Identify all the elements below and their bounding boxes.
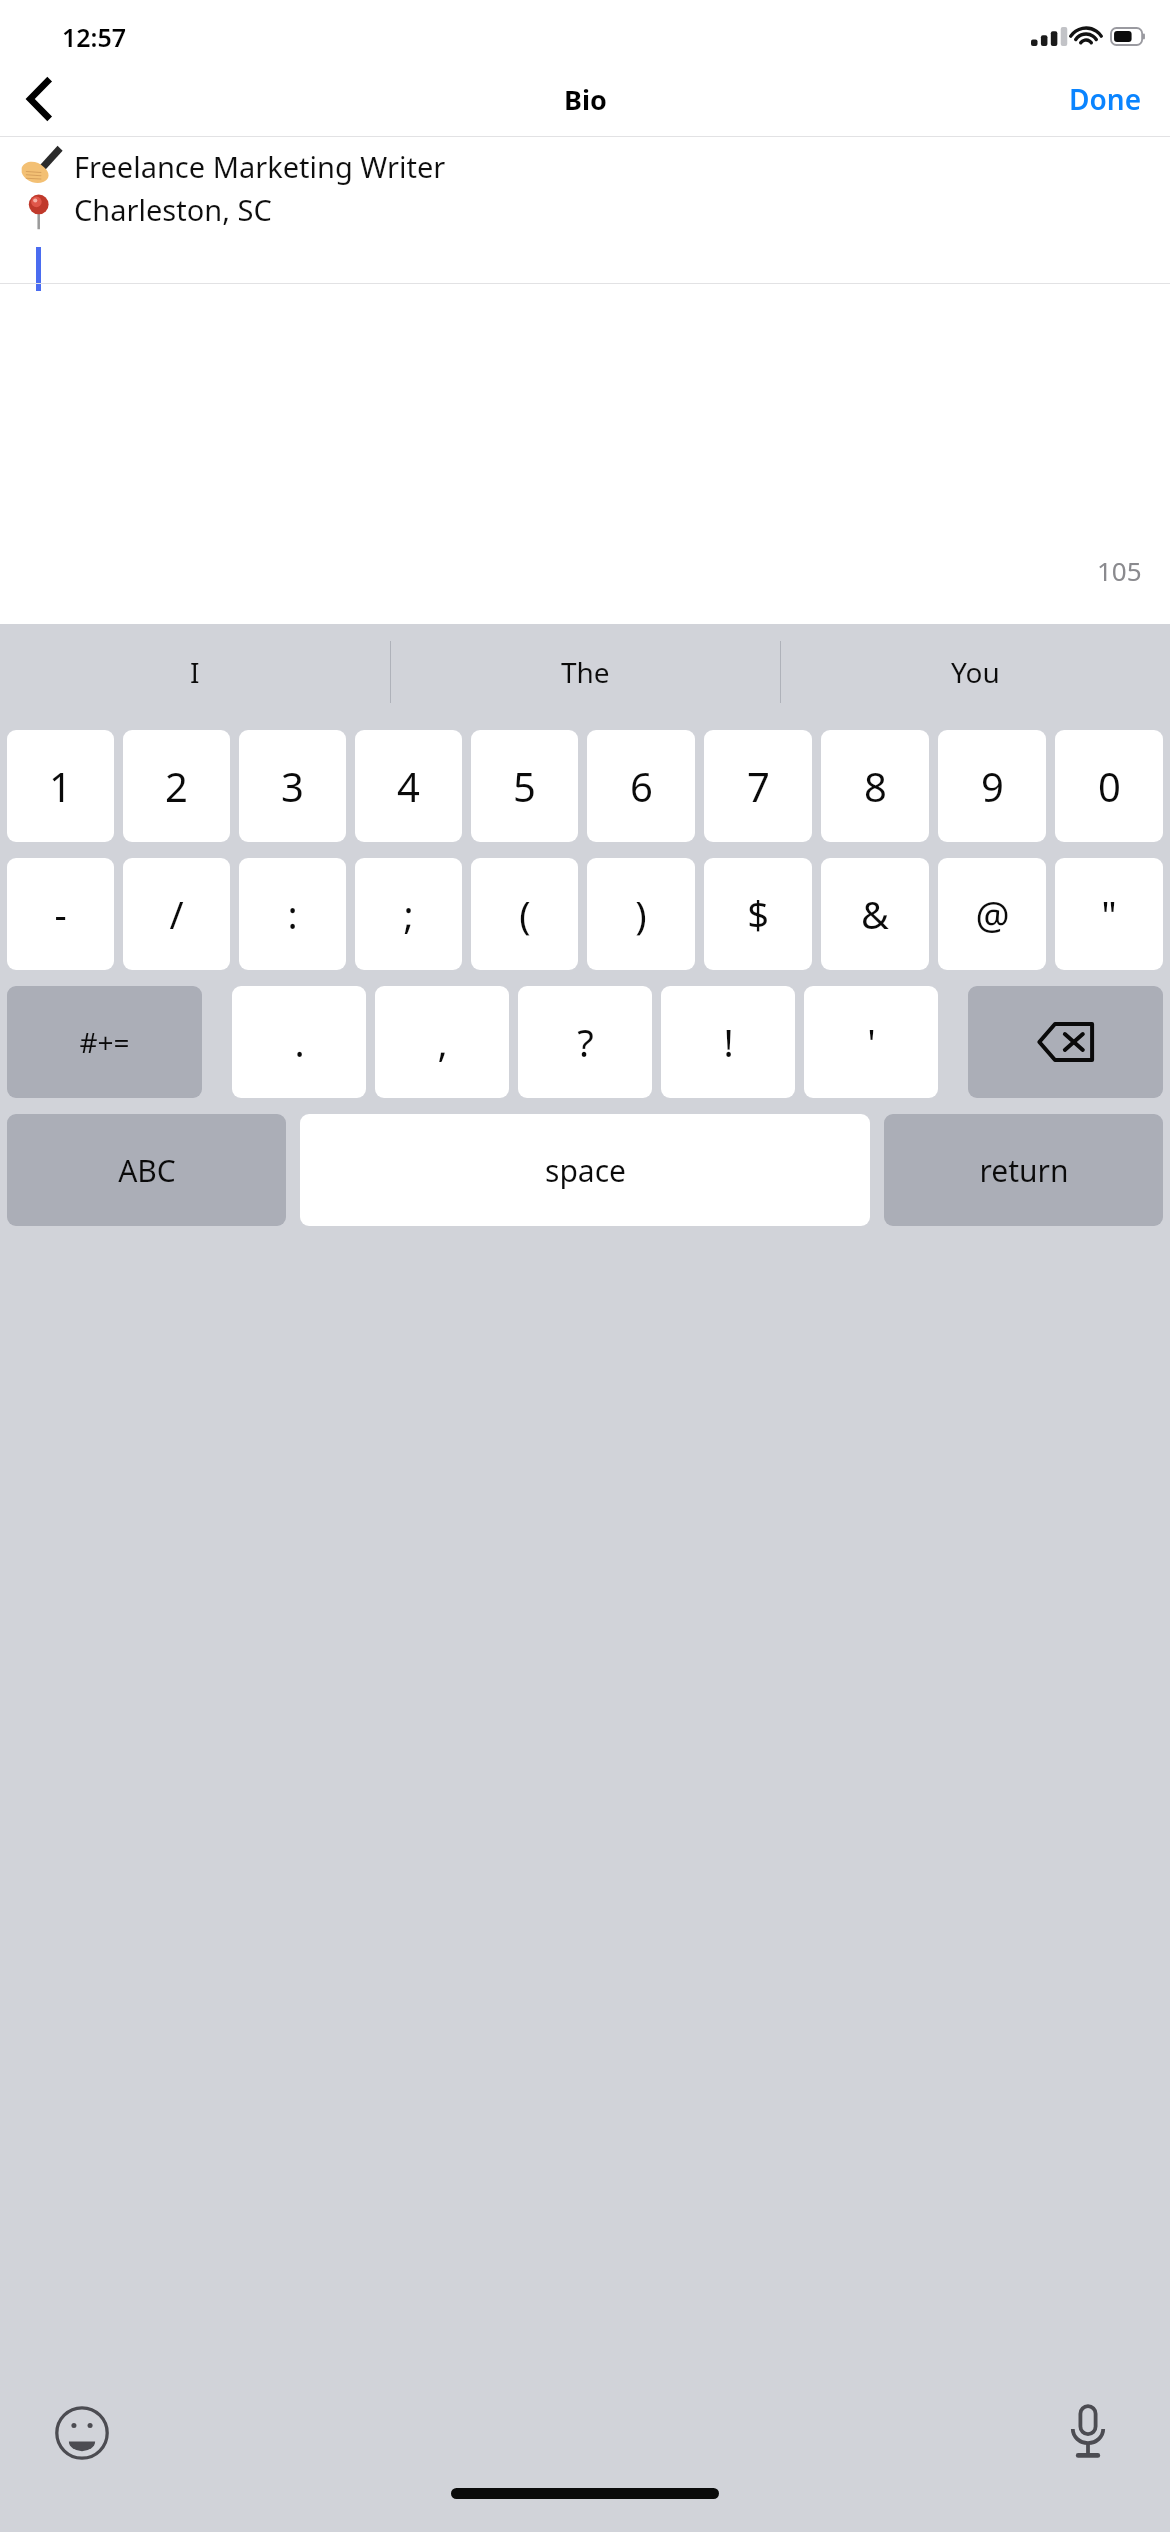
button[interactable]: Back (0, 62, 78, 136)
staticText: 6 (630, 759, 653, 813)
staticText: / (169, 888, 184, 940)
staticText: The (561, 653, 610, 691)
staticText: 4 (397, 759, 420, 813)
button[interactable]: #+= (7, 986, 202, 1098)
staticText: : (287, 888, 298, 940)
button[interactable]: $ (704, 858, 812, 970)
button[interactable]: Done (1041, 62, 1170, 136)
staticText: You (951, 653, 1000, 691)
button[interactable]: ! (661, 986, 795, 1098)
button[interactable]: . (232, 986, 366, 1098)
button[interactable]: , (375, 986, 509, 1098)
button[interactable]: 0 (1055, 730, 1163, 842)
button[interactable]: ) (587, 858, 695, 970)
button[interactable]: ; (355, 858, 462, 970)
button[interactable]: ABC (7, 1114, 286, 1226)
staticText: @ (975, 888, 1010, 940)
button[interactable]: Delete (968, 986, 1163, 1098)
staticText: ? (577, 1016, 594, 1068)
button[interactable]: 3 (239, 730, 346, 842)
button[interactable]: / (123, 858, 230, 970)
staticText: - (54, 888, 67, 940)
button[interactable]: return (884, 1114, 1163, 1226)
staticText: $ (747, 888, 769, 940)
staticText: I (190, 653, 200, 691)
button[interactable]: - (7, 858, 114, 970)
staticText: 2 (165, 759, 188, 813)
staticText: 0 (1098, 759, 1121, 813)
button[interactable]: 5 (471, 730, 578, 842)
button[interactable]: & (821, 858, 929, 970)
button[interactable]: Dictation (1052, 2397, 1124, 2469)
button[interactable]: " (1055, 858, 1163, 970)
staticText: 1 (49, 759, 72, 813)
staticText: . (294, 1016, 305, 1068)
staticText: 5 (513, 759, 536, 813)
button[interactable]: 7 (704, 730, 812, 842)
staticText: 105 (1097, 553, 1142, 588)
button[interactable]: @ (938, 858, 1046, 970)
button[interactable]: 6 (587, 730, 695, 842)
button[interactable]: 8 (821, 730, 929, 842)
staticText: ( (519, 888, 531, 940)
button[interactable]: ( (471, 858, 578, 970)
button[interactable]: 4 (355, 730, 462, 842)
staticText: ; (403, 888, 414, 940)
staticText: space (545, 1150, 626, 1191)
staticText: 9 (981, 759, 1004, 813)
staticText: Freelance Marketing Writer (74, 147, 446, 186)
button[interactable]: I (0, 624, 390, 720)
button[interactable]: space (300, 1114, 870, 1226)
button[interactable]: 2 (123, 730, 230, 842)
staticText: return (979, 1150, 1069, 1191)
staticText: 12:57 (62, 20, 127, 54)
staticText: Charleston, SC (74, 190, 272, 229)
button[interactable]: Emoji (46, 2397, 118, 2469)
button[interactable]: : (239, 858, 346, 970)
button[interactable]: ' (804, 986, 938, 1098)
staticText: & (861, 888, 889, 940)
staticText: ) (635, 888, 647, 940)
staticText: ! (723, 1016, 734, 1068)
staticText: Bio (564, 81, 607, 118)
button[interactable]: 9 (938, 730, 1046, 842)
button[interactable]: You (781, 624, 1170, 720)
staticText: , (437, 1016, 448, 1068)
button[interactable]: The (391, 624, 780, 720)
button[interactable]: ? (518, 986, 652, 1098)
staticText: #+= (79, 1023, 130, 1061)
staticText: 8 (864, 759, 887, 813)
staticText: Done (1069, 80, 1142, 118)
staticText: " (1101, 888, 1117, 940)
staticText: 7 (747, 759, 770, 813)
staticText: ' (867, 1016, 876, 1068)
staticText: ABC (118, 1150, 176, 1191)
button[interactable]: 1 (7, 730, 114, 842)
staticText: 3 (281, 759, 304, 813)
